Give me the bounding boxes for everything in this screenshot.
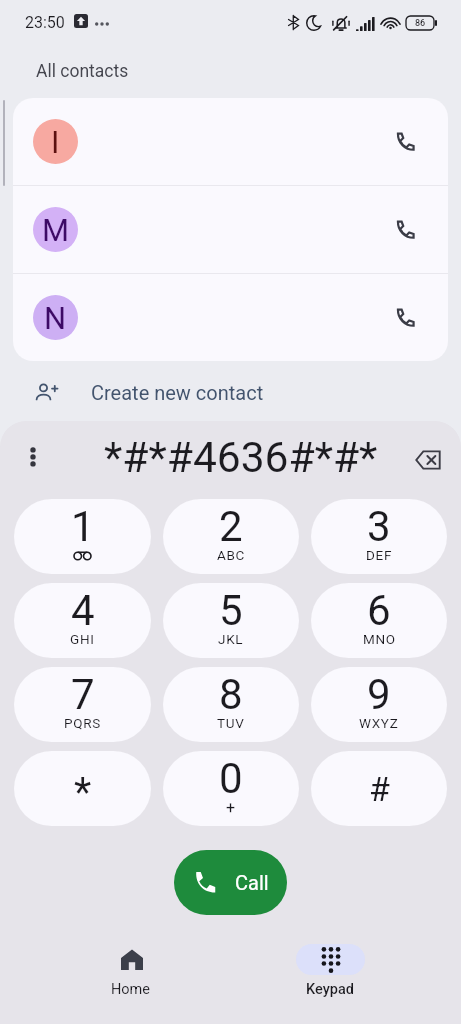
button[interactable]: * [14, 751, 151, 826]
button[interactable]: 5 [163, 583, 299, 658]
button[interactable]: 1 [14, 499, 151, 574]
staticText: # [369, 769, 390, 809]
button[interactable]: Call [174, 850, 287, 915]
button[interactable]: M [13, 186, 448, 273]
staticText: DEF [366, 547, 393, 563]
staticText: + [226, 798, 236, 817]
button[interactable]: 0 [163, 751, 299, 826]
staticText: ABC [217, 547, 246, 563]
staticText: 2 [219, 502, 243, 551]
staticText: N [44, 300, 67, 336]
staticText: All contacts [36, 61, 129, 82]
staticText: 8 [219, 670, 243, 719]
button[interactable]: Create new contact [0, 363, 461, 421]
button[interactable]: Call [382, 208, 426, 252]
staticText: 9 [367, 670, 391, 719]
button[interactable]: 7 [14, 667, 151, 742]
staticText: 6 [367, 586, 391, 635]
button[interactable]: I [13, 98, 448, 185]
staticText: 7 [71, 670, 95, 719]
button[interactable]: 8 [163, 667, 299, 742]
button[interactable]: Home [96, 926, 166, 998]
staticText: 3 [367, 502, 391, 551]
staticText: Home [111, 981, 151, 998]
button[interactable]: 2 [163, 499, 299, 574]
button[interactable]: 3 [311, 499, 447, 574]
staticText: Call [235, 871, 269, 894]
button[interactable]: Backspace [408, 440, 448, 480]
button[interactable]: Keypad [295, 926, 365, 998]
button[interactable]: # [311, 751, 447, 826]
button[interactable]: N [13, 274, 448, 361]
staticText: JKL [218, 631, 244, 647]
button[interactable]: Call [382, 120, 426, 164]
button[interactable]: Call [382, 296, 426, 340]
button[interactable]: 4 [14, 583, 151, 658]
staticText: GHI [70, 631, 95, 647]
staticText: Create new contact [91, 381, 264, 404]
staticText: 5 [219, 586, 243, 635]
staticText: *#*#4636#*#* [104, 433, 378, 483]
staticText: 0 [219, 754, 243, 803]
button[interactable]: More options [16, 439, 50, 473]
button[interactable]: 6 [311, 583, 447, 658]
staticText: * [74, 769, 92, 816]
staticText: I [51, 124, 60, 160]
staticText: 1 [71, 502, 95, 551]
staticText: TUV [217, 715, 245, 731]
staticText: Keypad [306, 981, 354, 998]
button[interactable]: 9 [311, 667, 447, 742]
staticText: 23:50 [25, 13, 65, 32]
staticText: 4 [71, 586, 95, 635]
staticText: 86 [415, 18, 426, 29]
staticText: MNO [363, 631, 396, 647]
staticText: PQRS [64, 715, 101, 731]
staticText: M [42, 212, 70, 248]
staticText: WXYZ [359, 715, 399, 731]
